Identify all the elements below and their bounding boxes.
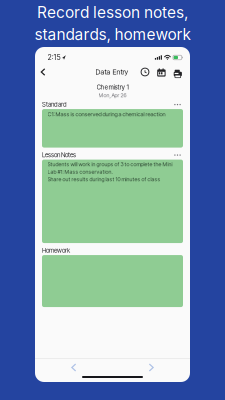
button[interactable]: Previous [63,359,85,375]
staticText: Lab #1: Mass conservation. [47,169,112,175]
button[interactable]: History [141,67,149,76]
staticText: Mon, Apr 26 [98,92,126,99]
staticText: C1: Mass is conserved during a chemical … [47,111,165,118]
button[interactable]: Calendar [157,67,166,76]
staticText: Share out results during last 10 minutes… [47,176,160,183]
staticText: Students will work in groups of 3 to com… [47,161,172,168]
staticText: Record lesson notes, [37,3,188,22]
button[interactable]: Back [36,65,50,78]
staticText: Standard [42,101,67,108]
staticText: Chemistry 1 [96,83,128,91]
button[interactable]: More options for Standard [172,102,183,108]
button[interactable]: Students will work in groups of 3 to com… [42,160,183,243]
staticText: 2:15 [47,53,60,62]
button[interactable]: Print [174,67,182,76]
button[interactable]: C1: Mass is conserved during a chemical … [42,109,183,148]
staticText: Homework [42,247,70,254]
button[interactable]: Next [140,359,162,375]
staticText: standards, homework [34,25,190,44]
staticText: Lesson Notes [42,151,76,159]
button[interactable]: More options for Lesson Notes [172,152,183,158]
staticText: Data Entry [95,68,128,76]
